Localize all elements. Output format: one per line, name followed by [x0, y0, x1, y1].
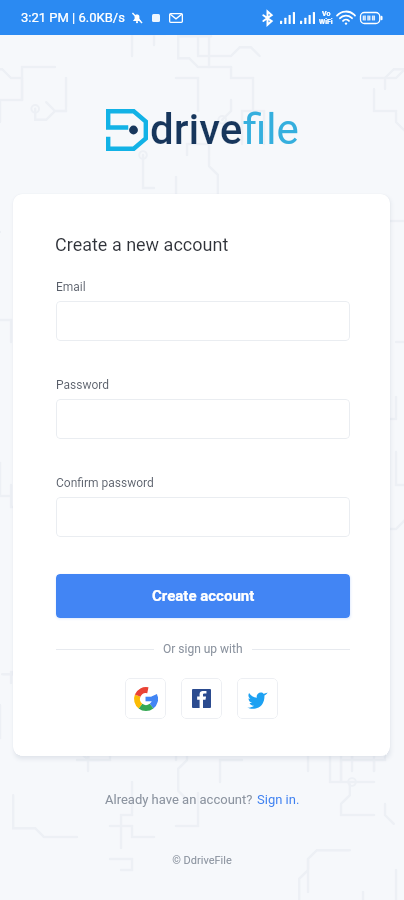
button[interactable]: Sign in. [257, 792, 300, 807]
staticText: drive [150, 105, 243, 154]
staticText: WiFi [319, 18, 333, 26]
staticText: Already have an account? [105, 792, 253, 807]
staticText: Confirm password [56, 476, 154, 490]
staticText: Or sign up with [163, 642, 243, 656]
button[interactable]: Sign up with Facebook [181, 678, 222, 719]
staticText: Vo [322, 10, 331, 18]
staticText: Create a new account [55, 234, 229, 255]
button[interactable] [56, 399, 350, 439]
button[interactable] [56, 301, 350, 341]
staticText: 3:21 PM | 6.0KB/s [21, 10, 125, 25]
staticText: Sign in. [257, 792, 300, 807]
button[interactable]: Sign up with Google [125, 678, 166, 719]
button[interactable]: Create account [56, 574, 350, 618]
staticText: file [243, 105, 299, 154]
staticText: © DdriveFile [0, 854, 404, 867]
button[interactable]: Sign up with Twitter [237, 678, 278, 719]
staticText: Password [56, 378, 110, 392]
staticText: Email [56, 280, 86, 294]
button[interactable] [56, 497, 350, 537]
staticText: Create account [152, 587, 255, 605]
